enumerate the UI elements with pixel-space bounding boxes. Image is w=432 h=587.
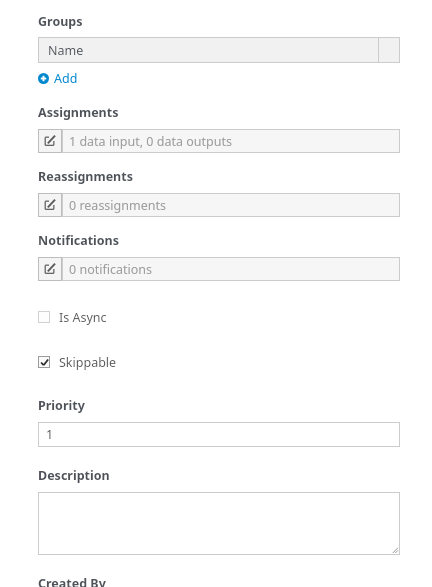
button[interactable]: Edit 0 reassignments — [38, 193, 400, 217]
button[interactable]: Is Async — [38, 308, 400, 326]
staticText: 1 — [46, 426, 54, 443]
button[interactable]: 1 — [38, 422, 400, 447]
button[interactable]: Skippable — [38, 353, 400, 371]
staticText: Created By — [38, 575, 106, 587]
staticText: Add — [54, 70, 78, 87]
staticText: 0 notifications — [69, 261, 152, 278]
staticText: Reassignments — [38, 168, 133, 185]
staticText: Is Async — [59, 309, 107, 326]
button[interactable]: Edit 0 notifications — [38, 257, 400, 281]
staticText: Assignments — [38, 104, 119, 121]
staticText: Name — [48, 42, 84, 59]
button[interactable]: Add — [38, 69, 78, 87]
other: Edit 0 reassignments — [38, 193, 62, 217]
staticText: 0 reassignments — [69, 197, 166, 214]
staticText: 1 data input, 0 data outputs — [69, 133, 232, 150]
button[interactable]: Edit 1 data input, 0 data outputs — [38, 129, 400, 153]
staticText: Priority — [38, 397, 85, 414]
other: Edit 0 notifications — [38, 257, 62, 281]
staticText: Notifications — [38, 232, 120, 249]
staticText: Skippable — [59, 354, 117, 371]
staticText: Description — [38, 467, 110, 484]
staticText: Groups — [38, 13, 83, 30]
other: Edit 1 data input, 0 data outputs — [38, 129, 62, 153]
button[interactable] — [38, 492, 400, 555]
